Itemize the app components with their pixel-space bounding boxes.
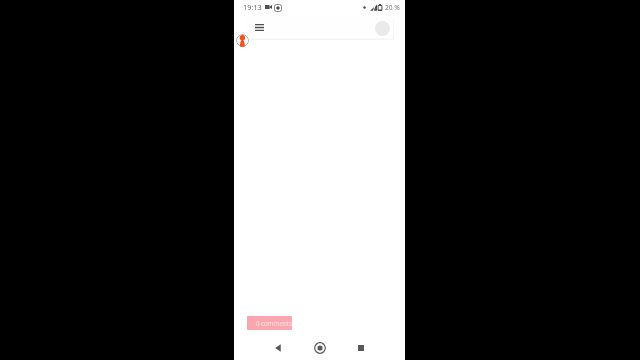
staticText: 20 % [385, 3, 400, 12]
staticText: 0 comments [256, 319, 292, 327]
button[interactable]: Home [306, 334, 334, 360]
button[interactable]: Open navigation menu [245, 17, 393, 38]
button[interactable]: 0 comments [247, 316, 292, 330]
button[interactable]: Account [375, 21, 390, 36]
button[interactable]: Profile photo [236, 34, 249, 47]
button[interactable]: Open navigation menu [252, 21, 266, 33]
button[interactable]: Recent apps [347, 334, 375, 360]
button[interactable]: Back [264, 334, 292, 360]
staticText: 19:13 [243, 2, 262, 12]
